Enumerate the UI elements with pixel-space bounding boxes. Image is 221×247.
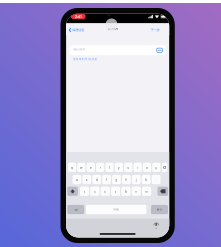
- button[interactable]: p: [152, 163, 160, 172]
- button[interactable]: r: [96, 163, 104, 172]
- button[interactable]: e: [87, 163, 95, 172]
- button[interactable]: h: [122, 175, 131, 184]
- button[interactable]: 没有序列号?点此处: [72, 56, 99, 62]
- staticText: u: [127, 165, 129, 170]
- button[interactable]: Delete: [157, 187, 168, 196]
- button[interactable]: a: [72, 175, 81, 184]
- staticText: v: [115, 189, 117, 194]
- button[interactable]: y: [115, 163, 123, 172]
- button[interactable]: k: [142, 175, 151, 184]
- staticText: p: [155, 165, 157, 170]
- button[interactable]: d: [92, 175, 101, 184]
- button[interactable]: x: [90, 187, 99, 196]
- staticText: o: [146, 165, 148, 170]
- staticText: n: [135, 189, 137, 194]
- staticText: 没有序列号?点此处: [73, 57, 98, 61]
- button[interactable]: j: [132, 175, 141, 184]
- staticText: b: [125, 189, 127, 194]
- staticText: a: [76, 177, 78, 182]
- staticText: 下一步: [150, 28, 159, 32]
- button[interactable]: q: [68, 163, 76, 172]
- button[interactable]: Space: [86, 205, 146, 214]
- staticText: 2:41: [75, 14, 82, 19]
- staticText: i: [137, 165, 138, 170]
- button[interactable]: c: [101, 187, 110, 196]
- staticText: y: [118, 165, 120, 170]
- staticText: 123: [74, 208, 77, 211]
- button[interactable]: Return: [151, 205, 168, 214]
- staticText: z: [84, 189, 86, 194]
- button[interactable]: Numbers: [67, 205, 84, 214]
- button[interactable]: 请输入序列号: [69, 45, 166, 55]
- button[interactable]: s: [82, 175, 91, 184]
- staticText: q: [71, 165, 73, 170]
- staticText: m: [145, 189, 148, 194]
- button[interactable]: z: [80, 187, 89, 196]
- button[interactable]: m: [142, 187, 151, 196]
- staticText: e: [90, 165, 92, 170]
- staticText: 空格: [113, 208, 119, 211]
- staticText: 换行: [156, 208, 162, 211]
- staticText: w: [80, 165, 83, 170]
- button[interactable]: g: [112, 175, 121, 184]
- button[interactable]: Switch keyboard: [162, 163, 167, 172]
- button[interactable]: f: [102, 175, 111, 184]
- button[interactable]: u: [124, 163, 132, 172]
- staticText: g: [115, 177, 117, 182]
- button[interactable]: t: [105, 163, 114, 172]
- staticText: j: [136, 177, 137, 182]
- button[interactable]: 保理信息: [68, 26, 85, 34]
- staticText: c: [104, 189, 106, 194]
- button[interactable]: v: [111, 187, 120, 196]
- staticText: f: [106, 177, 107, 182]
- staticText: k: [145, 177, 147, 182]
- button[interactable]: Dictation: [153, 222, 160, 230]
- button[interactable]: b: [121, 187, 130, 196]
- staticText: d: [96, 177, 98, 182]
- staticText: 请输入序列号: [73, 48, 85, 51]
- staticText: r: [100, 165, 101, 170]
- button[interactable]: o: [143, 163, 151, 172]
- button[interactable]: 下一步: [149, 26, 161, 34]
- staticText: 输入序列号: [108, 28, 118, 30]
- button[interactable]: n: [132, 187, 141, 196]
- staticText: s: [86, 177, 88, 182]
- button[interactable]: w: [77, 163, 85, 172]
- staticText: t: [109, 165, 110, 170]
- button[interactable]: Shift: [67, 187, 78, 196]
- staticText: 保理信息: [72, 28, 84, 32]
- staticText: h: [125, 177, 127, 182]
- staticText: x: [94, 189, 96, 194]
- button[interactable]: i: [133, 163, 142, 172]
